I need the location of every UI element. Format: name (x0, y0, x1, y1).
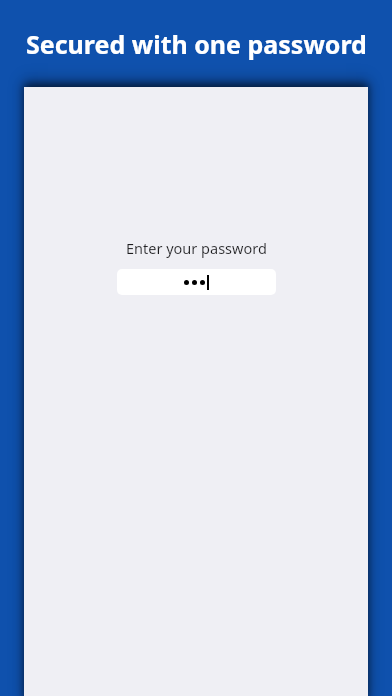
button[interactable] (117, 269, 276, 295)
staticText: Secured with one password (26, 27, 367, 61)
staticText: Enter your password (126, 238, 267, 258)
